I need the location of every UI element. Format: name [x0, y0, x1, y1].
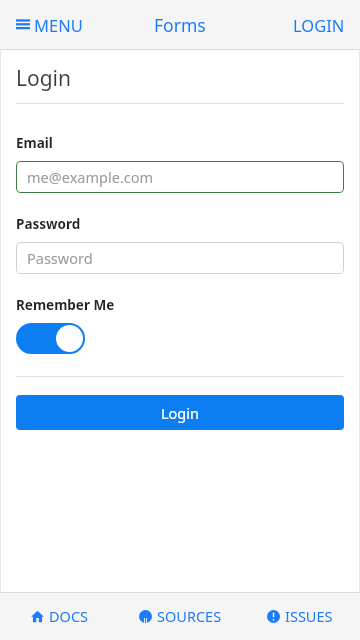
button[interactable]: me@example.com	[16, 161, 344, 193]
staticText: Remember Me	[16, 296, 115, 314]
staticText: Login	[16, 64, 72, 93]
staticText: DOCS	[49, 606, 89, 626]
staticText: MENU	[34, 14, 83, 36]
button[interactable]: MENU	[14, 8, 85, 42]
staticText: Login	[161, 403, 199, 423]
button[interactable]: ISSUES	[240, 592, 360, 640]
staticText: Password	[27, 248, 93, 268]
button[interactable]: Login	[16, 395, 344, 430]
button[interactable]: Forms	[150, 9, 210, 41]
staticText: ISSUES	[285, 606, 333, 626]
button[interactable]: Password	[16, 242, 344, 274]
staticText: Password	[16, 215, 81, 233]
staticText: SOURCES	[157, 606, 222, 626]
staticText: Email	[16, 134, 53, 152]
button[interactable]: DOCS	[0, 592, 120, 640]
staticText: me@example.com	[27, 167, 154, 187]
staticText: Forms	[154, 13, 206, 37]
staticText: LOGIN	[293, 14, 345, 36]
button[interactable]: LOGIN	[290, 8, 348, 42]
button[interactable]: SOURCES	[120, 592, 240, 640]
button[interactable]: Remember Me toggle, on	[16, 323, 85, 354]
